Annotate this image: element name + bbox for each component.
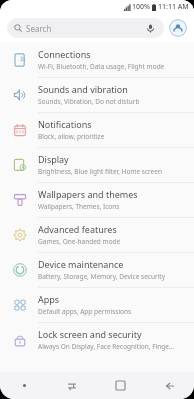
staticText: Games, One-handed mode <box>38 237 121 246</box>
staticText: Notifications <box>38 118 92 130</box>
button[interactable]: Advanced features <box>0 217 194 252</box>
staticText: Display <box>38 153 69 165</box>
staticText: 11:11 AM <box>158 2 189 12</box>
button[interactable]: Search <box>7 18 164 38</box>
staticText: Search <box>26 23 52 34</box>
staticText: Apps <box>38 293 60 305</box>
button[interactable]: Account <box>169 19 187 37</box>
button[interactable]: Display <box>0 147 194 182</box>
button[interactable]: Back <box>145 372 194 399</box>
staticText: Brightness, Blue light filter, Home scre… <box>38 167 162 176</box>
staticText: Wallpapers, Themes, Icons <box>38 202 120 211</box>
button[interactable]: Connections <box>0 42 194 77</box>
staticText: Sounds and vibration <box>38 83 128 95</box>
staticText: Block, allow, prioritize <box>38 132 105 141</box>
button[interactable]: Sounds and vibration <box>0 77 194 112</box>
button[interactable]: Menu <box>0 372 48 399</box>
staticText: Sounds, Vibration, Do not disturb <box>38 97 140 106</box>
staticText: Default apps, App permissions <box>38 307 132 316</box>
staticText: Device maintenance <box>38 258 124 270</box>
button[interactable]: Lock screen and security <box>0 322 194 357</box>
staticText: Battery, Storage, Memory, Device securit… <box>38 272 165 281</box>
staticText: 100% <box>132 2 150 12</box>
button[interactable]: Device maintenance <box>0 252 194 287</box>
button[interactable]: Recents <box>48 372 96 399</box>
staticText: Advanced features <box>38 223 117 235</box>
staticText: Lock screen and security <box>38 328 142 340</box>
button[interactable]: Home <box>96 372 145 399</box>
staticText: Wallpapers and themes <box>38 188 138 200</box>
button[interactable]: Voice search <box>143 21 157 35</box>
button[interactable]: Notifications <box>0 112 194 147</box>
staticText: Connections <box>38 48 91 60</box>
staticText: Always On Display, Face Recognition, Fin… <box>38 342 175 351</box>
staticText: Wi-Fi, Bluetooth, Data usage, Flight mod… <box>38 62 165 71</box>
button[interactable]: Apps <box>0 287 194 322</box>
button[interactable]: Wallpapers and themes <box>0 182 194 217</box>
